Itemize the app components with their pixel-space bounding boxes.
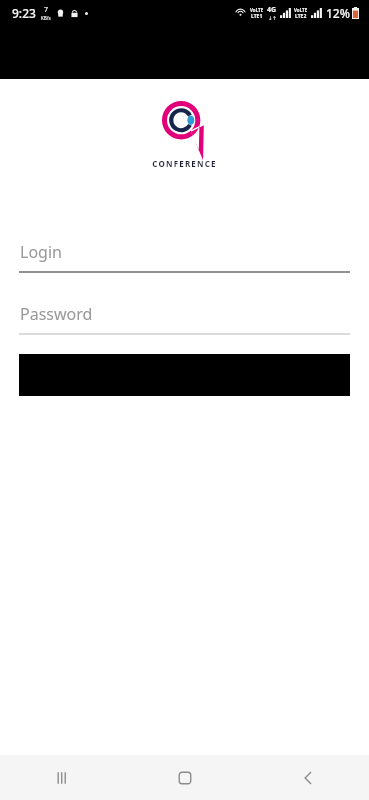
staticText: VoLTE <box>250 7 264 13</box>
button[interactable]: Login <box>19 241 350 275</box>
staticText: KB/s <box>41 15 51 21</box>
button[interactable]: Home <box>123 755 246 800</box>
staticText: Login <box>20 241 62 263</box>
button[interactable]: Password <box>19 303 350 337</box>
staticText: 4G <box>267 5 277 15</box>
staticText: VoLTE <box>294 7 308 13</box>
staticText: ↓↑ <box>268 15 277 21</box>
staticText: LTE1 <box>251 13 263 20</box>
button[interactable]: Back <box>246 755 369 800</box>
staticText: 12% <box>326 5 350 21</box>
staticText: CONFERENCE <box>152 158 217 169</box>
button[interactable]: Recent apps <box>0 755 123 800</box>
staticText: 7 <box>44 5 49 15</box>
staticText: 9:23 <box>12 5 36 21</box>
staticText: Password <box>20 303 93 325</box>
staticText: LTE2 <box>295 13 307 20</box>
